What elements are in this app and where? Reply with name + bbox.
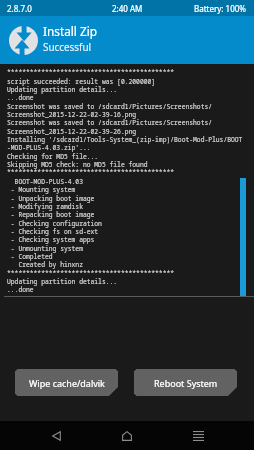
- staticText: Screenshot_2015-12-22-02-39-26.png: [7, 127, 137, 136]
- staticText: Battery: 100%: [194, 3, 246, 14]
- staticText: - Checking configuration: [7, 219, 102, 228]
- staticText: Reboot System: [154, 377, 218, 389]
- staticText: Successful: [43, 40, 92, 53]
- staticText: Checking for MD5 file...: [7, 152, 99, 161]
- staticText: - Unpacking boot image: [7, 194, 95, 203]
- staticText: - Mounting system: [7, 185, 76, 194]
- staticText: ****************************************…: [7, 269, 175, 278]
- staticText: ****************************************…: [7, 168, 175, 177]
- staticText: - Modifying ramdisk: [7, 202, 83, 211]
- staticText: Skipping MD5 check: no MD5 file found: [7, 160, 148, 169]
- button[interactable]: Home: [107, 421, 147, 450]
- staticText: 2:40 AM: [112, 3, 143, 14]
- button[interactable]: Reboot System: [134, 369, 237, 396]
- button[interactable]: Back: [36, 421, 76, 450]
- staticText: - Completed: [7, 252, 53, 261]
- staticText: Screenshot was saved to /sdcard1/Picture…: [7, 102, 213, 111]
- staticText: - Unmounting system: [7, 244, 83, 253]
- button[interactable]: Recent apps: [178, 421, 218, 450]
- staticText: Wipe cache/dalvik: [29, 377, 105, 389]
- staticText: Updating partition details...: [7, 277, 118, 286]
- button[interactable]: Wipe cache/dalvik: [15, 369, 118, 396]
- staticText: ...done: [7, 93, 34, 102]
- staticText: -MOD-PLUS-4.03.zip'...: [7, 143, 91, 152]
- staticText: - Checking fs on sd-ext: [7, 227, 99, 236]
- staticText: Screenshot_2015-12-22-02-39-16.png: [7, 110, 137, 119]
- staticText: Install Zip: [43, 23, 98, 39]
- staticText: ...done: [7, 285, 34, 294]
- staticText: Installing '/sdcard1/Tools-System_(zip-i…: [7, 135, 243, 144]
- staticText: Created by hinxnz: [7, 260, 83, 269]
- staticText: Updating partition details...: [7, 85, 118, 94]
- staticText: 2.8.7.0: [7, 3, 32, 14]
- staticText: Screenshot was saved to /sdcard1/Picture…: [7, 118, 213, 127]
- staticText: script succeeded: result was [0.200000]: [7, 77, 156, 86]
- staticText: ****************************************…: [7, 68, 175, 77]
- staticText: - Checking system apps: [7, 235, 95, 244]
- staticText: BOOT-MOD-PLUS-4.03: [7, 177, 83, 186]
- staticText: - Repacking boot image: [7, 210, 95, 219]
